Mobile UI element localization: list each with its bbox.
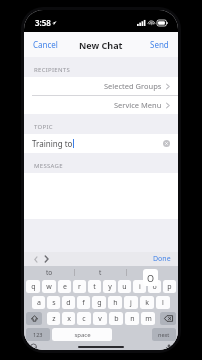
button[interactable]: Next field xyxy=(41,253,52,265)
button[interactable]: s xyxy=(47,296,60,309)
staticText: New Chat xyxy=(79,39,123,51)
staticText: MESSAGE xyxy=(34,162,63,170)
button[interactable]: i xyxy=(133,280,146,293)
button[interactable]: z xyxy=(47,312,60,325)
button[interactable]: Emoji xyxy=(28,344,39,350)
staticText: Done xyxy=(153,254,171,264)
staticText: 3:58 xyxy=(35,17,51,28)
staticText: o xyxy=(151,268,155,277)
button[interactable]: k xyxy=(140,296,154,309)
button[interactable]: Cancel xyxy=(24,34,67,55)
staticText: p xyxy=(167,282,172,292)
button[interactable]: l xyxy=(156,296,170,309)
button[interactable]: r xyxy=(73,280,86,293)
button[interactable]: a xyxy=(32,296,45,309)
staticText: k xyxy=(145,298,149,308)
button[interactable]: f xyxy=(77,296,90,309)
staticText: c xyxy=(82,314,86,324)
button[interactable]: Training to xyxy=(24,134,178,153)
staticText: 123 xyxy=(33,331,43,338)
button[interactable]: e xyxy=(58,280,71,293)
staticText: Selected Groups xyxy=(104,81,162,91)
staticText: j xyxy=(130,298,132,308)
button[interactable]: Backspace xyxy=(160,312,176,325)
button[interactable]: Previous field xyxy=(30,253,41,265)
button[interactable]: y xyxy=(103,280,116,293)
staticText: o xyxy=(152,282,157,292)
staticText: w xyxy=(46,282,52,292)
button[interactable]: Done xyxy=(146,254,178,264)
staticText: u xyxy=(122,282,127,292)
staticText: x xyxy=(67,314,71,324)
staticText: h xyxy=(113,298,118,308)
staticText: i xyxy=(139,282,141,292)
staticText: e xyxy=(63,282,67,292)
button[interactable]: d xyxy=(62,296,75,309)
staticText: l xyxy=(162,298,164,308)
button[interactable]: t xyxy=(88,280,101,293)
staticText: next xyxy=(158,331,170,338)
button[interactable]: to xyxy=(24,266,74,278)
button[interactable]: Service Menu xyxy=(24,96,178,114)
staticText: RECIPIENTS xyxy=(34,66,71,74)
staticText: Cancel xyxy=(33,39,58,50)
button[interactable]: n xyxy=(125,312,139,325)
staticText: y xyxy=(108,282,112,292)
staticText: z xyxy=(52,314,56,324)
button[interactable]: Send xyxy=(141,34,178,55)
button[interactable]: b xyxy=(109,312,123,325)
staticText: q xyxy=(31,282,36,292)
staticText: a xyxy=(37,298,41,308)
staticText: m xyxy=(145,314,152,324)
button[interactable]: space xyxy=(52,328,112,341)
button[interactable]: x xyxy=(62,312,75,325)
staticText: d xyxy=(66,298,71,308)
staticText: t xyxy=(99,268,102,277)
button[interactable]: v xyxy=(93,312,107,325)
staticText: s xyxy=(52,298,56,308)
staticText: Service Menu xyxy=(114,100,162,110)
button[interactable]: p xyxy=(163,280,176,293)
staticText: space xyxy=(74,331,91,339)
staticText: t xyxy=(93,282,96,292)
staticText: b xyxy=(114,314,119,324)
button[interactable]: Selected Groups xyxy=(24,77,178,95)
button[interactable]: Dictation xyxy=(165,344,173,350)
button[interactable]: Clear text xyxy=(163,140,170,147)
button[interactable]: u xyxy=(118,280,131,293)
button[interactable]: c xyxy=(77,312,91,325)
staticText: Training to xyxy=(32,138,73,149)
staticText: Send xyxy=(150,39,169,50)
button[interactable]: Numbers xyxy=(26,328,50,341)
button[interactable]: g xyxy=(92,296,106,309)
button[interactable]: w xyxy=(42,280,56,293)
button[interactable]: t xyxy=(75,266,126,278)
staticText: n xyxy=(130,314,135,324)
button[interactable]: j xyxy=(124,296,138,309)
staticText: f xyxy=(82,298,85,308)
staticText: r xyxy=(78,282,81,292)
button[interactable]: o xyxy=(127,266,178,278)
button[interactable]: h xyxy=(108,296,122,309)
staticText: O xyxy=(147,272,155,284)
staticText: g xyxy=(97,298,102,308)
button[interactable]: Shift xyxy=(26,312,42,325)
button[interactable]: o xyxy=(148,280,161,293)
staticText: TOPIC xyxy=(34,123,53,131)
button[interactable]: next xyxy=(152,328,176,341)
button[interactable]: m xyxy=(141,312,155,325)
staticText: v xyxy=(98,314,102,324)
staticText: to xyxy=(46,268,53,277)
button[interactable]: q xyxy=(26,280,40,293)
